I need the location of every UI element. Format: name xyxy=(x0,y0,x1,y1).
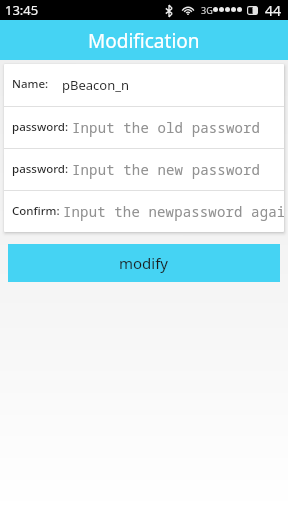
staticText: Modification xyxy=(88,28,200,54)
staticText: password: xyxy=(12,119,69,135)
button[interactable]: password: xyxy=(4,149,284,190)
staticText: 13:45 xyxy=(5,1,39,19)
staticText: 44 xyxy=(265,1,282,20)
button[interactable]: modify xyxy=(8,244,280,282)
staticText: password: xyxy=(12,161,69,177)
button[interactable]: Confirm: xyxy=(4,191,284,232)
staticText: Input the newpassword again xyxy=(63,202,284,221)
staticText: Confirm: xyxy=(12,203,60,219)
staticText: modify xyxy=(119,253,169,273)
button[interactable]: password: xyxy=(4,107,284,148)
staticText: 3G xyxy=(201,4,213,16)
staticText: Input the old password xyxy=(72,118,261,137)
staticText: pBeacon_n xyxy=(62,76,130,94)
staticText: Name: xyxy=(12,76,49,92)
staticText: Input the new password xyxy=(72,160,261,179)
button[interactable]: Name: xyxy=(4,64,284,106)
